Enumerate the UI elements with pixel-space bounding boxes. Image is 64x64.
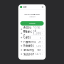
staticText: Tap to start — [28, 16, 35, 18]
staticText: Account — [23, 26, 32, 33]
staticText: 120 — [35, 44, 41, 47]
staticText: 24/7 — [34, 52, 41, 56]
staticText: Wallet — [23, 6, 27, 8]
button[interactable]: Continue — [20, 21, 44, 26]
staticText: › — [42, 32, 43, 35]
staticText: Cards — [23, 36, 30, 39]
staticText: 2 — [39, 36, 41, 39]
staticText: Personal — [32, 26, 41, 33]
button[interactable]: Balance — [18, 31, 46, 35]
staticText: Balance — [23, 30, 32, 37]
staticText: 4,280 — [32, 32, 41, 35]
staticText: Payments — [23, 40, 35, 43]
staticText: On — [37, 40, 41, 43]
staticText: Your account is ready — [24, 13, 40, 15]
staticText: › — [42, 36, 43, 39]
staticText: › — [42, 48, 43, 52]
button[interactable]: Payments — [18, 40, 46, 44]
staticText: › — [42, 52, 43, 56]
staticText: › — [42, 40, 43, 43]
staticText: Face — [36, 48, 41, 52]
staticText: Support — [23, 52, 34, 56]
button[interactable]: Cards — [18, 35, 46, 39]
staticText: › — [42, 27, 43, 31]
staticText: Continue — [28, 22, 35, 24]
button[interactable]: Menu — [41, 6, 44, 8]
button[interactable]: Support — [18, 52, 46, 56]
button[interactable]: Security — [18, 48, 46, 52]
button[interactable]: Rewards — [18, 44, 46, 48]
staticText: Rewards — [23, 44, 33, 47]
button[interactable]: Account — [18, 27, 46, 31]
staticText: Security — [23, 48, 33, 52]
staticText: › — [42, 44, 43, 47]
